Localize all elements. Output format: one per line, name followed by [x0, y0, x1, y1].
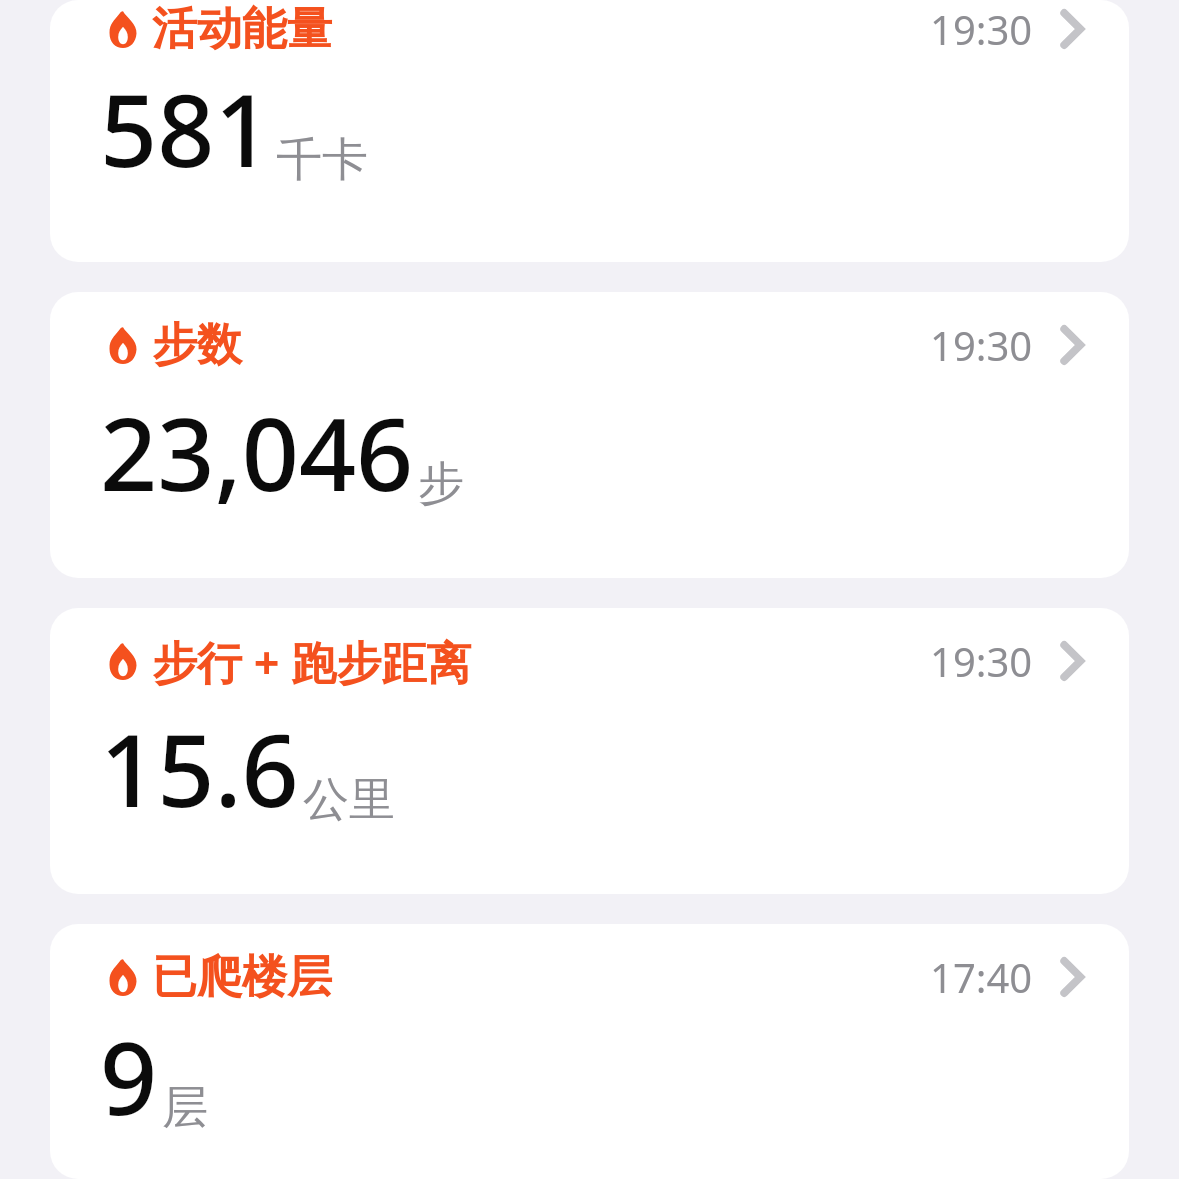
staticText: 步行 + 跑步距离 [152, 631, 472, 692]
staticText: 15.6 [100, 700, 299, 836]
button[interactable]: 活动能量 [50, 0, 1129, 262]
staticText: 19:30 [930, 318, 1033, 372]
button[interactable]: 步数 [50, 292, 1129, 578]
staticText: 581 [100, 60, 272, 196]
staticText: 公里 [303, 771, 395, 829]
staticText: 步数 [152, 317, 242, 374]
staticText: 19:30 [930, 2, 1033, 56]
button[interactable]: 已爬楼层 [50, 924, 1129, 1179]
other: Show details [1059, 9, 1085, 49]
button[interactable]: 步行 + 跑步距离 [50, 608, 1129, 894]
staticText: 已爬楼层 [152, 949, 332, 1006]
staticText: 23,046 [100, 384, 414, 520]
staticText: 千卡 [276, 131, 368, 189]
staticText: 19:30 [930, 634, 1033, 688]
staticText: 步 [418, 455, 464, 513]
other: Show details [1059, 641, 1085, 681]
staticText: 17:40 [930, 950, 1033, 1004]
staticText: 活动能量 [152, 1, 332, 58]
staticText: 9 [100, 1008, 158, 1144]
staticText: 层 [162, 1079, 208, 1137]
other: Show details [1059, 957, 1085, 997]
other: Show details [1059, 325, 1085, 365]
